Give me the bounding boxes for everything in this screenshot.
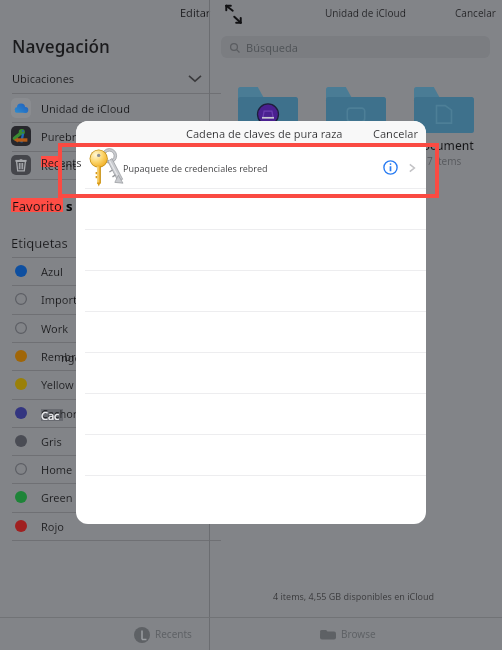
staticText: Cachorro	[41, 409, 63, 420]
button[interactable]: Rojo	[0, 512, 209, 540]
staticText: Cachorro	[41, 406, 89, 421]
staticText: Shared	[248, 137, 289, 153]
staticText: Browse	[341, 627, 376, 641]
button[interactable]: Home	[0, 455, 209, 483]
staticText: Work	[41, 321, 69, 336]
button[interactable]: Rembrandt	[0, 342, 209, 370]
staticText: Azul	[41, 264, 63, 279]
button[interactable]: Pupaquete de credenciales rebred	[76, 147, 426, 188]
staticText: Favorito	[12, 197, 66, 213]
button[interactable]: Cachorro	[0, 399, 209, 427]
button[interactable]: Pages	[326, 87, 386, 168]
staticText: Unidad de iCloud	[41, 101, 130, 116]
staticText: Green	[41, 490, 73, 505]
button[interactable]: Búsqueda	[221, 36, 490, 58]
staticText: Rojo	[41, 519, 64, 534]
staticText: Pages	[339, 137, 374, 153]
staticText: 7 items	[251, 154, 286, 168]
staticText: Rembrandt	[41, 349, 100, 364]
staticText: Búsqueda	[246, 40, 298, 55]
button[interactable]: Browse	[319, 625, 376, 643]
staticText: nge	[61, 350, 81, 365]
button[interactable]: Favorito	[12, 197, 73, 213]
button[interactable]: Documents	[414, 87, 474, 168]
button[interactable]: Recents	[0, 151, 209, 179]
staticText: Cadena de claves de pura raza	[186, 126, 343, 141]
staticText: Recents	[41, 155, 82, 170]
button[interactable]: Unidad de iCloud	[0, 94, 209, 122]
button[interactable]: Purebred	[0, 122, 209, 150]
button[interactable]: Collapse	[224, 5, 243, 24]
button[interactable]: Work	[0, 314, 209, 342]
button[interactable]: Info	[383, 160, 398, 175]
button[interactable]: Gris	[0, 427, 209, 455]
button[interactable]: Importante	[0, 285, 209, 313]
staticText: s	[66, 197, 73, 213]
staticText: Documents	[414, 137, 474, 153]
staticText: Yellow	[41, 377, 74, 392]
button[interactable]: Editar	[180, 5, 211, 20]
button[interactable]	[76, 189, 426, 229]
staticText: Navegación	[12, 35, 110, 58]
staticText: Home	[41, 462, 73, 477]
button[interactable]: Cancelar	[455, 6, 496, 20]
staticText: 7 items	[427, 154, 462, 168]
staticText: Pupaquete de credenciales rebred	[123, 162, 268, 174]
staticText: Etiquetas	[11, 234, 68, 252]
button[interactable]: Recents	[133, 625, 192, 643]
button[interactable]: Cancelar	[373, 126, 418, 141]
staticText: Recents	[41, 158, 82, 173]
staticText: Favorito	[12, 197, 66, 213]
button[interactable]: Green	[0, 483, 209, 511]
staticText: Gris	[41, 434, 62, 449]
staticText: Recents	[155, 627, 192, 641]
button[interactable]: Azul	[0, 257, 209, 285]
staticText: Ubicaciones	[12, 71, 75, 86]
staticText: Purebred	[41, 129, 90, 144]
staticText: Importante	[41, 292, 101, 307]
button[interactable]: Shared	[238, 87, 298, 168]
button[interactable]: Yellow	[0, 370, 209, 398]
staticText: Unidad de iCloud	[325, 6, 406, 20]
staticText: s	[66, 197, 73, 213]
staticText: 4 items, 4,55 GB disponibles en iCloud	[273, 590, 435, 602]
